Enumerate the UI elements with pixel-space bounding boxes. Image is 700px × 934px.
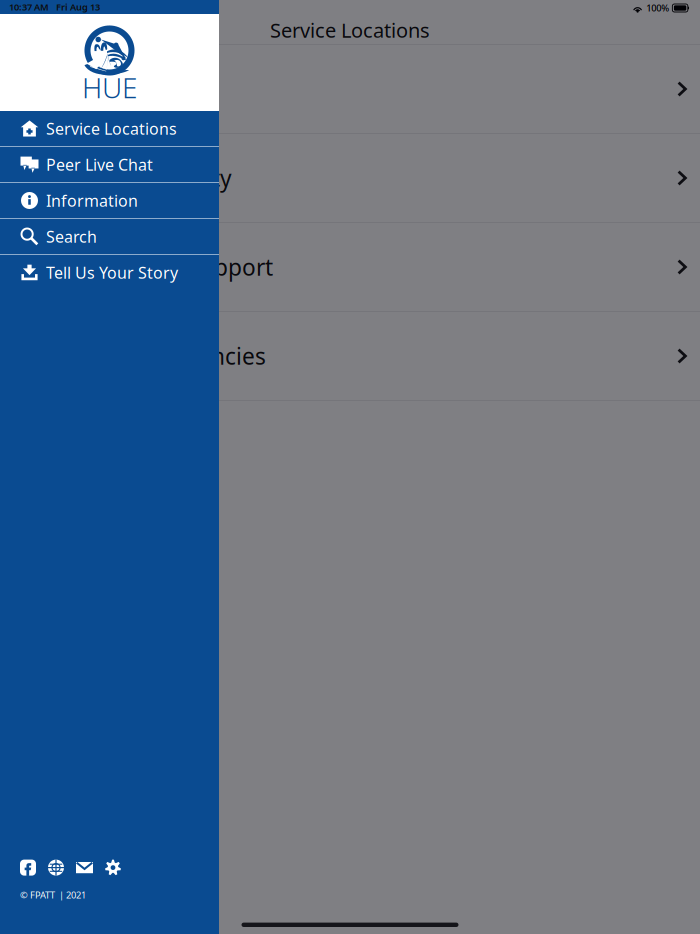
staticText: Service Locations (270, 17, 430, 43)
button[interactable]: Settings (105, 860, 121, 876)
staticText: 100% (646, 2, 669, 14)
staticText: 10:37 AM (9, 1, 49, 13)
staticText: Information (46, 190, 138, 211)
button[interactable]: Mental Health Support (0, 223, 700, 311)
staticText: Mental Health Support (30, 252, 273, 282)
button[interactable]: HIV Testing Facility (0, 134, 700, 222)
button[interactable]: Email (76, 859, 93, 876)
button[interactable]: Peer Live Chat (0, 147, 219, 182)
button[interactable]: Search (0, 219, 219, 254)
staticText: HUE (82, 69, 137, 106)
button[interactable]: Website (48, 860, 64, 876)
staticText: Tell Us Your Story (46, 262, 178, 283)
staticText: © FPATT | 2021 (20, 889, 86, 901)
staticText: Search (46, 226, 97, 247)
button[interactable]: Service Locations (0, 111, 219, 146)
button[interactable]: Information (0, 183, 219, 218)
staticText: FPATT Clinics (30, 74, 168, 104)
staticText: Service Locations (46, 118, 177, 139)
staticText: HIV Testing Facility (30, 163, 232, 193)
staticText: Government Agencies (30, 341, 266, 371)
button[interactable]: Tell Us Your Story (0, 255, 219, 290)
staticText: Fri Aug 13 (56, 1, 100, 13)
button[interactable]: FPATT Clinics (0, 45, 700, 133)
staticText: Peer Live Chat (46, 154, 153, 175)
button[interactable]: Government Agencies (0, 312, 700, 400)
button[interactable]: Facebook (20, 860, 36, 876)
